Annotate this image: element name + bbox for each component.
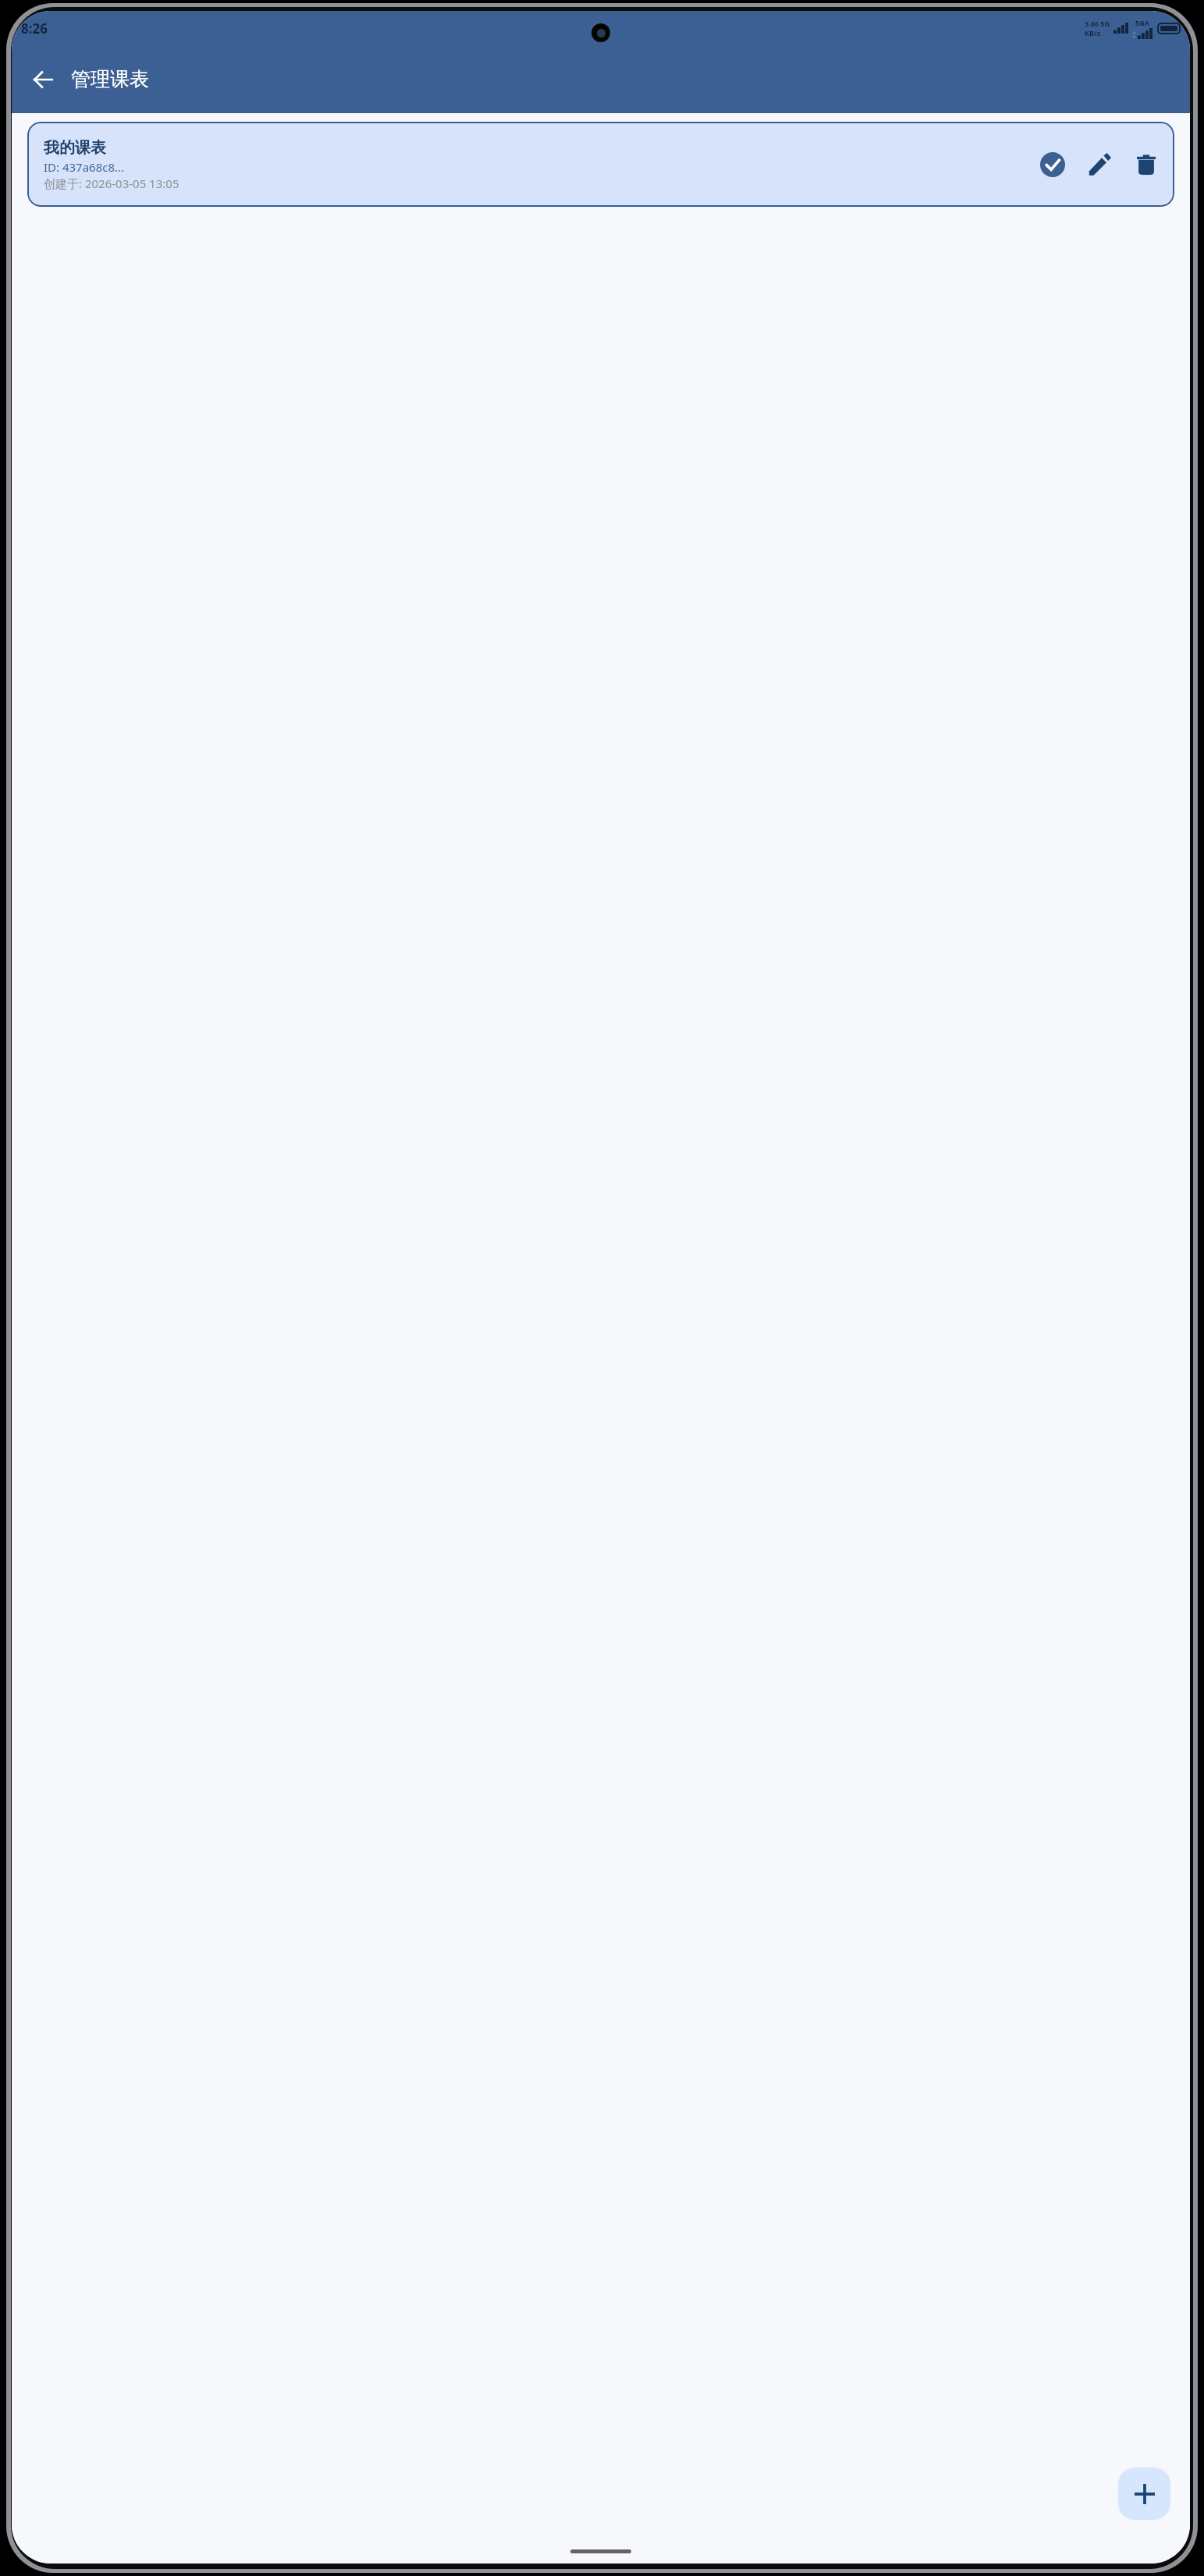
staticText: ID: 437a68c8... [44, 159, 125, 175]
staticText: 管理课表 [71, 67, 149, 91]
button[interactable]: Delete [1129, 147, 1163, 182]
staticText: 3.86 5G [1085, 19, 1110, 28]
button[interactable]: Selected schedule [1035, 147, 1070, 182]
button[interactable]: 我的课表 [27, 122, 1174, 207]
staticText: 5GA [1135, 18, 1149, 27]
button[interactable]: Back [24, 61, 62, 98]
staticText: KB/s [1085, 28, 1101, 37]
staticText: 我的课表 [44, 138, 106, 158]
button[interactable]: Add schedule [1118, 2468, 1170, 2520]
staticText: 创建于: 2026-03-05 13:05 [44, 176, 179, 191]
staticText: 8:26 [21, 20, 48, 37]
button[interactable]: Edit [1082, 147, 1117, 182]
